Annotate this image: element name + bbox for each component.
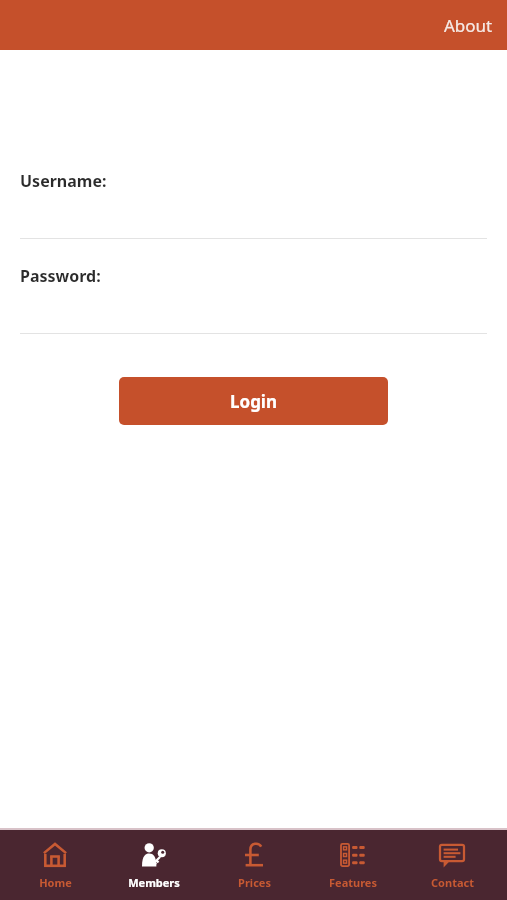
staticText: Prices — [238, 875, 271, 890]
button[interactable]: Contact — [408, 834, 496, 896]
staticText: Username: — [20, 170, 107, 192]
button[interactable]: Login — [119, 377, 388, 425]
staticText: Members — [128, 875, 180, 890]
staticText: Features — [329, 875, 377, 890]
button[interactable]: Features — [309, 834, 397, 896]
button[interactable]: About — [430, 4, 507, 47]
staticText: Password: — [20, 265, 101, 287]
staticText: About — [444, 14, 493, 37]
button[interactable]: Members — [110, 834, 198, 896]
staticText: Home — [39, 875, 72, 890]
staticText: Login — [230, 390, 278, 413]
button[interactable]: Prices — [210, 834, 298, 896]
staticText: Contact — [431, 875, 474, 890]
button[interactable]: Home — [11, 834, 99, 896]
